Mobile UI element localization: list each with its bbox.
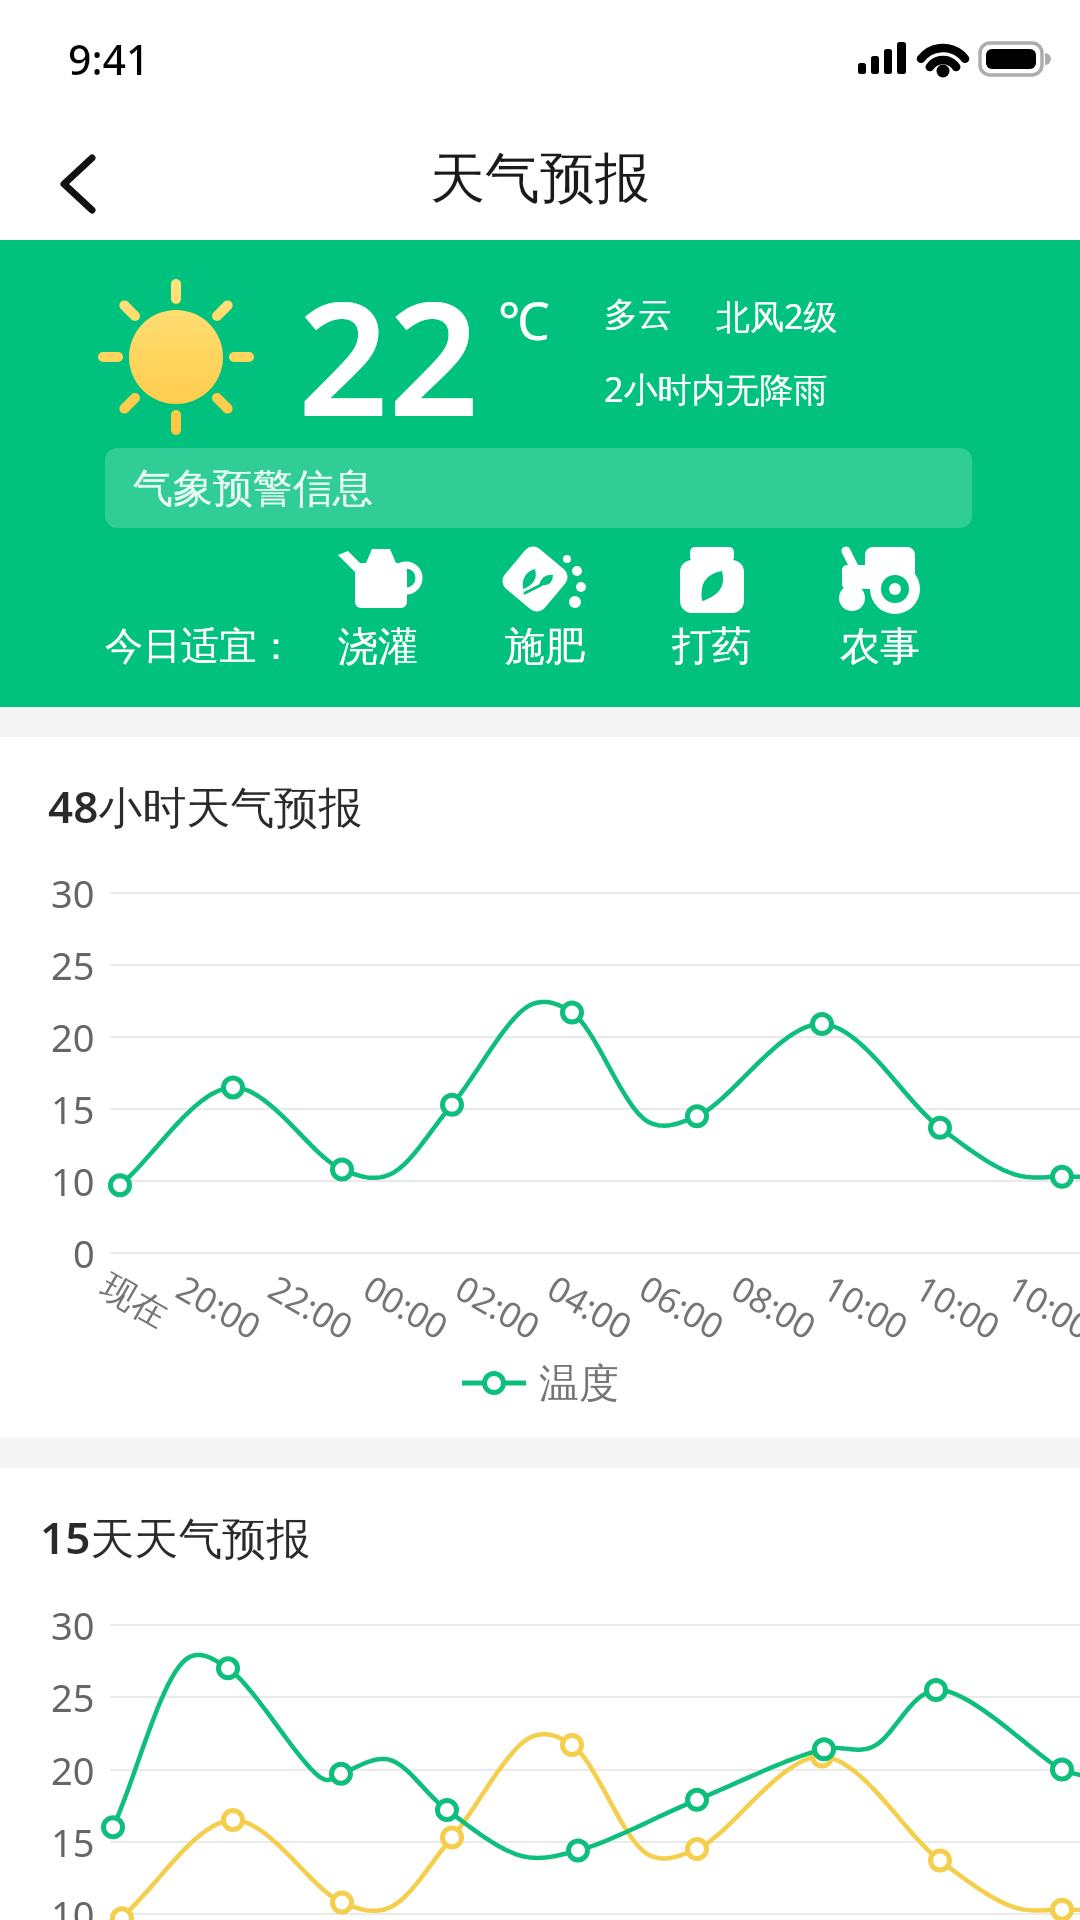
staticText: 20:00 [168,1264,270,1351]
staticText: 15 [51,1083,95,1135]
staticText: 06:00 [631,1264,733,1351]
staticText: 现在 [93,1264,176,1337]
staticText: 10 [51,1888,95,1920]
staticText: 48小时天气预报 [48,776,363,836]
button[interactable]: 打药 [652,545,772,671]
staticText: 22 [298,247,479,462]
staticText: 今日适宜： [105,622,295,670]
staticText: 多云 [604,293,672,336]
staticText: 2小时内无降雨 [604,366,828,412]
staticText: 15 [51,1816,95,1868]
staticText: 0 [73,1227,95,1279]
staticText: 打药 [672,621,752,671]
staticText: 20 [51,1011,95,1063]
staticText: 25 [51,1671,95,1723]
staticText: 农事 [840,621,920,671]
staticText: 10:00 [815,1264,917,1351]
staticText: 气象预警信息 [133,463,373,513]
staticText: 浇灌 [338,621,418,671]
button[interactable]: 施肥 [485,545,605,671]
staticText: 00:00 [355,1264,457,1351]
staticText: 施肥 [505,621,585,671]
staticText: 30 [51,1599,95,1651]
staticText: 08:00 [723,1264,825,1351]
staticText: 10 [51,1155,95,1207]
staticText: 北风2级 [716,293,838,339]
staticText: ℃ [498,284,550,355]
button[interactable]: 温度 [462,1358,619,1408]
staticText: 02:00 [447,1264,549,1351]
button[interactable]: 浇灌 [318,545,438,671]
staticText: 天气预报 [430,144,650,213]
staticText: 10:00 [907,1264,1009,1351]
staticText: 15天天气预报 [40,1507,311,1567]
button[interactable]: 气象预警信息 [105,448,972,528]
button[interactable] [40,140,120,230]
staticText: 10:00 [999,1264,1080,1351]
staticText: 20 [51,1744,95,1796]
staticText: 30 [51,867,95,919]
staticText: 9:41 [68,31,150,87]
button[interactable]: 农事 [820,545,940,671]
staticText: 22:00 [260,1264,362,1351]
staticText: 04:00 [539,1264,641,1351]
staticText: 25 [51,939,95,991]
staticText: 温度 [539,1358,619,1408]
